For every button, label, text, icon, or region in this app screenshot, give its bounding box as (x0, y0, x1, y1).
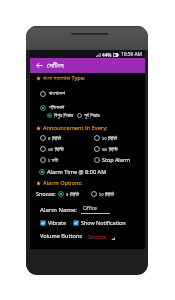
button[interactable]: ৫ মিনিট (58, 190, 80, 197)
button[interactable]: Announcement In Every: (36, 124, 108, 132)
staticText: Volume Buttons (40, 232, 83, 240)
staticText: বাংলা ক্যালেন্ডার Type: (43, 74, 86, 82)
staticText: বাংলাদেশ (49, 91, 65, 97)
staticText: Announcement In Every: (43, 124, 108, 132)
staticText: Office (83, 205, 97, 212)
staticText: Alarm Options: (43, 179, 83, 187)
staticText: ১০ মিনিট (102, 134, 118, 141)
button[interactable]: ১০ মিনিট (94, 134, 118, 141)
staticText: Alarm Name: (40, 206, 77, 214)
button[interactable]: Office (81, 205, 110, 214)
staticText: ৬০ মিনিট (102, 145, 118, 152)
staticText: Alarm Time @ 8:00 AM (47, 168, 107, 176)
staticText: Vibrate (48, 219, 67, 226)
staticText: Stop Alarm (102, 156, 131, 163)
button[interactable]: Show Notification (73, 219, 126, 226)
staticText: ১ ঘন্টা (48, 156, 59, 163)
button[interactable]: বাংলা ক্যালেন্ডার Type: (36, 74, 86, 82)
button[interactable]: Alarm Time @ 8:00 AM (39, 168, 107, 176)
button[interactable]: Alarm Options: (36, 179, 83, 187)
staticText: 44% (102, 52, 112, 58)
button[interactable]: সূর্য সিদ্ধান্ত (77, 112, 100, 119)
button[interactable]: বিশুদ্ধ সিদ্ধান্ত (47, 112, 74, 119)
button[interactable]: ৬০ মিনিট (94, 145, 118, 152)
button[interactable]: ৫ মিনিট (40, 134, 62, 141)
staticText: 10:59 AM (121, 51, 142, 58)
staticText: Snooze (88, 233, 107, 240)
button[interactable]: Vibrate (40, 219, 67, 226)
button[interactable]: Stop Alarm (94, 156, 131, 163)
button[interactable]: ১ ঘন্টা (40, 156, 59, 163)
button[interactable]: বাংলাদেশ (40, 91, 65, 97)
staticText: Snooze: (36, 190, 56, 197)
button[interactable]: ৩০ মিনিট (40, 145, 64, 152)
staticText: পশ্চিমবঙ্গ (49, 105, 65, 111)
staticText: Show Notification (81, 219, 126, 226)
staticText: সেটিংস (47, 62, 64, 70)
staticText: ১০ মিনিট (99, 190, 115, 197)
button[interactable]: পশ্চিমবঙ্গ (40, 105, 65, 111)
staticText: বিশুদ্ধ সিদ্ধান্ত (54, 112, 74, 119)
staticText: ৫ মিনিট (48, 134, 62, 141)
button[interactable]: Snooze (88, 233, 115, 240)
staticText: ৩০ মিনিট (48, 145, 64, 152)
button[interactable]: ১০ মিনিট (91, 190, 115, 197)
button[interactable]: Back (34, 60, 45, 71)
staticText: ৫ মিনিট (66, 190, 80, 197)
staticText: সূর্য সিদ্ধান্ত (84, 112, 100, 119)
